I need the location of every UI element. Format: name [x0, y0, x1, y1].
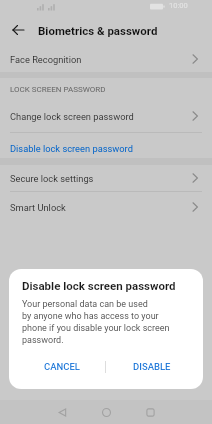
button[interactable]: Secure lock settings [0, 165, 212, 191]
staticText: Change lock screen password [10, 111, 134, 122]
staticText: Smart Unlock [10, 202, 66, 213]
staticText: Disable lock screen password [22, 279, 176, 292]
button[interactable] [102, 408, 111, 417]
button[interactable] [12, 24, 25, 36]
button[interactable] [146, 408, 155, 417]
staticText: DISABLE [133, 361, 171, 372]
button[interactable]: Smart Unlock [0, 192, 212, 222]
button[interactable]: DISABLE [106, 359, 203, 374]
staticText: Disable lock screen password [10, 143, 133, 154]
staticText: Secure lock settings [10, 173, 94, 184]
button[interactable]: CANCEL [9, 359, 105, 374]
button[interactable]: Face Recognition [0, 46, 212, 72]
staticText: Face Recognition [10, 54, 82, 65]
staticText: Your personal data can be used by anyone… [22, 299, 170, 346]
staticText: 10:00 [169, 1, 188, 10]
staticText: Biometrics & password [38, 24, 158, 37]
button[interactable] [58, 408, 67, 417]
staticText: LOCK SCREEN PASSWORD [10, 85, 106, 94]
button[interactable]: Disable lock screen password [0, 133, 212, 158]
staticText: CANCEL [44, 361, 80, 372]
button[interactable]: Change lock screen password [0, 100, 212, 132]
